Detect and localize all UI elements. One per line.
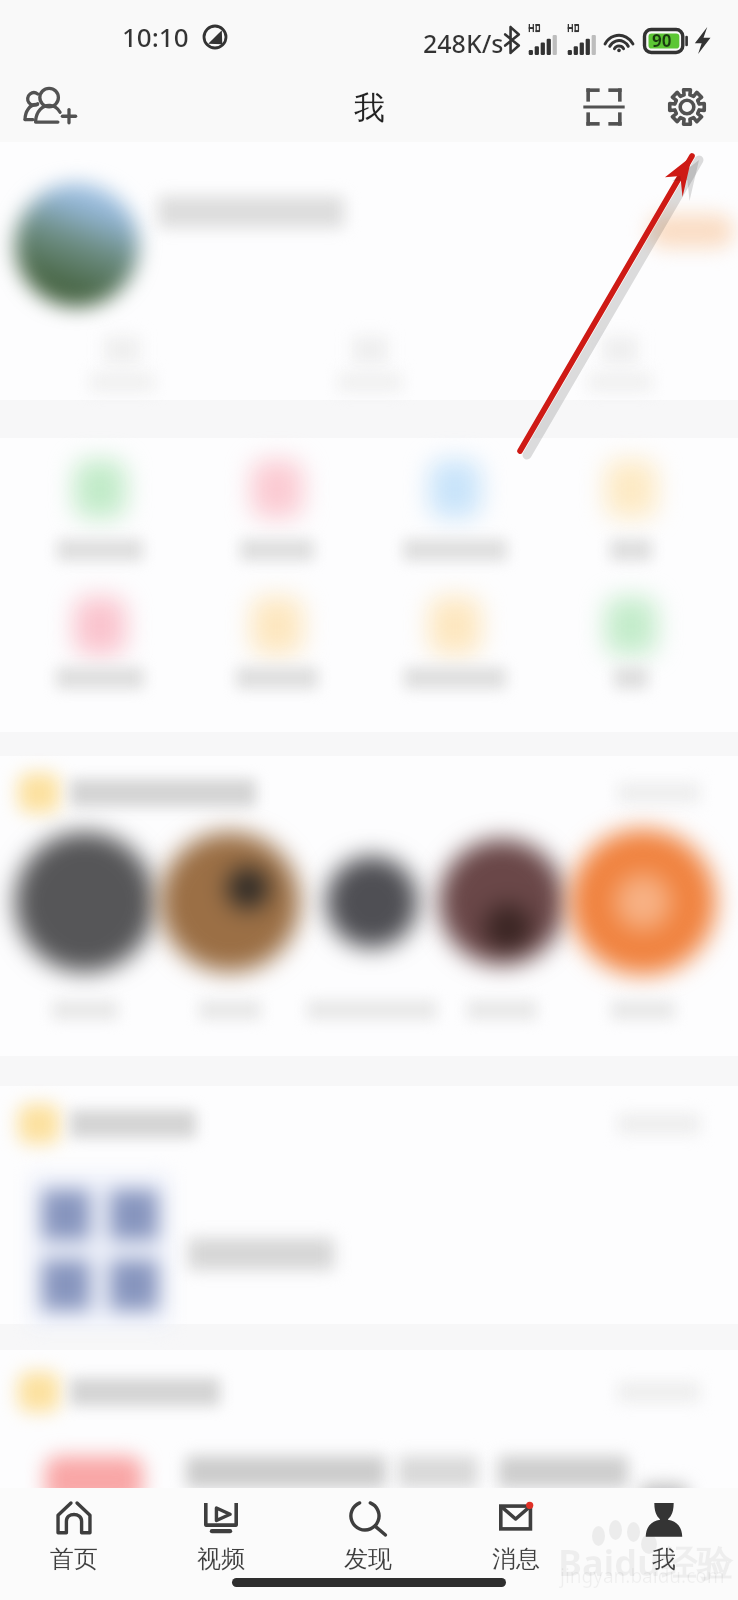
- button[interactable]: [546, 564, 716, 696]
- staticText: 我: [354, 88, 385, 127]
- staticText: 消息: [492, 1544, 540, 1574]
- button[interactable]: [10, 1160, 180, 1340]
- button[interactable]: Add friend: [8, 72, 92, 142]
- button[interactable]: [300, 830, 444, 1038]
- button[interactable]: [15, 564, 185, 696]
- button[interactable]: [540, 328, 700, 404]
- button[interactable]: 我: [590, 1488, 738, 1578]
- button[interactable]: [370, 564, 540, 696]
- staticText: 发现: [344, 1544, 392, 1574]
- button[interactable]: [12, 1440, 712, 1520]
- staticText: 10:10: [122, 19, 189, 54]
- button[interactable]: [430, 830, 574, 1038]
- staticText: 90: [652, 29, 672, 52]
- staticText: 248K/s: [423, 26, 504, 60]
- staticText: 首页: [50, 1544, 98, 1574]
- button[interactable]: [370, 427, 540, 559]
- staticText: Baidu经验: [558, 1538, 733, 1587]
- button[interactable]: Settings: [646, 72, 728, 142]
- button[interactable]: 发现: [294, 1488, 442, 1578]
- button[interactable]: [546, 427, 716, 559]
- button[interactable]: [15, 427, 185, 559]
- button[interactable]: Profile photo: [0, 150, 172, 340]
- button[interactable]: [158, 830, 302, 1038]
- staticText: 视频: [197, 1544, 245, 1574]
- button[interactable]: [290, 328, 450, 404]
- button[interactable]: [192, 427, 362, 559]
- button[interactable]: 视频: [147, 1488, 294, 1578]
- button[interactable]: [13, 830, 157, 1038]
- staticText: jingyan.baidu.com: [560, 1563, 725, 1589]
- button[interactable]: 消息: [442, 1488, 590, 1578]
- button[interactable]: 首页: [0, 1488, 147, 1578]
- button[interactable]: [571, 830, 715, 1038]
- button[interactable]: [42, 328, 202, 404]
- button[interactable]: Scan: [562, 72, 646, 142]
- button[interactable]: [192, 564, 362, 696]
- staticText: 我: [652, 1544, 676, 1574]
